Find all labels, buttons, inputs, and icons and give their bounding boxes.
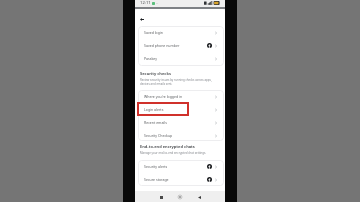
staticText: Secure storage (144, 177, 169, 182)
button[interactable]: Saved phone number (138, 39, 224, 52)
button[interactable]: Secure storage (138, 173, 224, 186)
staticText: Saved login (144, 30, 163, 35)
staticText: Security checks (140, 71, 171, 76)
staticText: Where you're logged in (144, 94, 183, 99)
button[interactable]: Security Checkup (138, 129, 224, 141)
staticText: Login alerts (144, 107, 164, 112)
staticText: Security Checkup (144, 133, 173, 138)
button[interactable]: Back (195, 193, 203, 201)
button[interactable]: Home (176, 193, 184, 201)
button[interactable]: Where you're logged in (138, 90, 224, 103)
staticText: Review security issues by running checks… (140, 78, 212, 86)
staticText: Security alerts (144, 164, 168, 169)
staticText: Saved phone number (144, 43, 180, 48)
button[interactable]: Back (137, 14, 147, 24)
staticText: 12:11 (140, 0, 151, 6)
button[interactable]: Recent emails (138, 116, 224, 129)
staticText: Recent emails (144, 120, 167, 125)
button[interactable]: Login alerts (138, 103, 224, 116)
staticText: Manage your end-to-end encrypted chat se… (140, 151, 207, 155)
button[interactable]: Security alerts (138, 160, 224, 173)
staticText: End-to-end encrypted chats (140, 144, 195, 149)
button[interactable]: Saved login (138, 26, 224, 39)
staticText: Passkey (144, 56, 157, 61)
button[interactable]: Recent apps (157, 193, 165, 201)
button[interactable]: Passkey (138, 52, 224, 65)
